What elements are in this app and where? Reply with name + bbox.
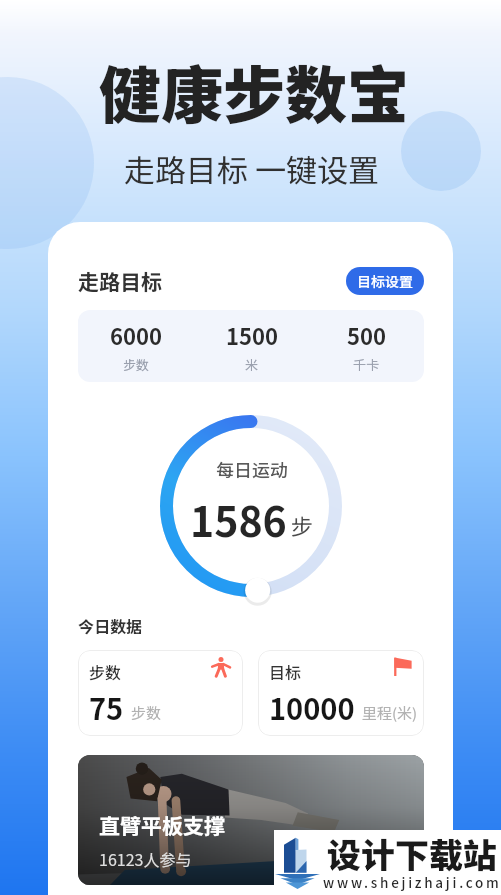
- staticText: 设计下载站: [327, 829, 497, 878]
- other: Goal: [393, 657, 412, 676]
- staticText: 步数: [89, 660, 122, 683]
- staticText: www.shejizhaji.com: [323, 872, 501, 892]
- staticText: 走路目标: [78, 266, 162, 296]
- staticText: 10000: [269, 686, 355, 728]
- staticText: 步: [291, 509, 314, 541]
- staticText: 走路目标 一键设置: [124, 146, 379, 191]
- staticText: 千卡: [353, 355, 380, 374]
- staticText: 16123人参与: [99, 847, 192, 870]
- staticText: 500: [347, 319, 386, 351]
- staticText: 里程(米): [362, 702, 418, 724]
- staticText: 步数: [123, 355, 150, 374]
- button[interactable]: 步数: [78, 650, 243, 736]
- staticText: 75: [89, 686, 124, 728]
- staticText: 今日数据: [78, 614, 143, 637]
- staticText: 6000: [110, 319, 162, 351]
- staticText: 米: [245, 355, 259, 374]
- other: Steps: [211, 657, 231, 677]
- button[interactable]: 目标: [258, 650, 424, 736]
- button[interactable]: 直臂平板支撑: [78, 755, 424, 885]
- staticText: 每日运动: [216, 456, 288, 482]
- staticText: 目标设置: [357, 271, 413, 291]
- staticText: 步数: [131, 702, 162, 724]
- staticText: 1500: [226, 319, 278, 351]
- staticText: 直臂平板支撑: [99, 810, 225, 840]
- staticText: 健康步数宝: [99, 46, 410, 136]
- staticText: 1586: [190, 489, 287, 548]
- button[interactable]: 目标设置: [346, 267, 424, 295]
- staticText: 目标: [269, 660, 302, 683]
